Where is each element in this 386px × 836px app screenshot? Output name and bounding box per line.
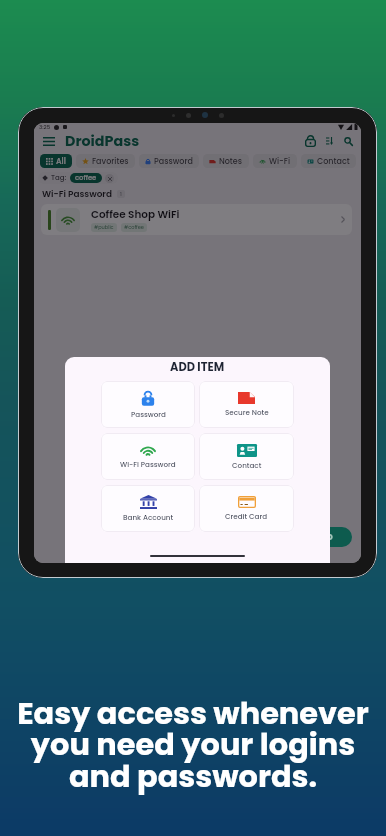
button[interactable]: Sort [320, 132, 339, 150]
button[interactable]: Contact [301, 154, 356, 168]
staticText: Easy access whenever you need your login… [17, 692, 369, 798]
staticText: ADD ITEM [170, 359, 225, 375]
button[interactable]: Password [101, 381, 195, 428]
button[interactable]: All [40, 154, 72, 168]
staticText: Bank Account [123, 512, 174, 522]
button[interactable]: Wi-Fi [253, 154, 297, 168]
staticText: coffee [75, 173, 97, 183]
button[interactable]: Bank Account [101, 485, 195, 532]
staticText: DroidPass [65, 131, 140, 151]
button[interactable]: Credit Card [199, 485, 294, 532]
staticText: Coffee Shop WiFi [91, 207, 180, 222]
button[interactable]: Lock vault [300, 132, 320, 150]
staticText: Favorites [92, 156, 129, 167]
staticText: 3:25 [39, 123, 51, 131]
staticText: Password [154, 156, 193, 167]
staticText: Wi-Fi [269, 156, 291, 167]
staticText: Wi-Fi Password [120, 459, 176, 469]
staticText: Wi-Fi Password [42, 188, 112, 200]
staticText: Credit Card [225, 511, 268, 521]
staticText: Tag: [51, 173, 67, 183]
staticText: 1 [120, 190, 122, 198]
button[interactable]: ADD [294, 527, 352, 547]
button[interactable]: Contact [199, 433, 294, 480]
staticText: Contact [317, 156, 350, 167]
button[interactable]: Notes [203, 154, 249, 168]
staticText: Contact [232, 460, 262, 470]
button[interactable]: Favorites [76, 154, 135, 168]
staticText: #public [94, 224, 114, 231]
button[interactable]: Password [139, 154, 199, 168]
button[interactable]: Coffee Shop WiFi [41, 204, 352, 235]
button[interactable]: Menu [40, 132, 58, 150]
staticText: ADD [313, 531, 333, 544]
button[interactable]: Clear tag [105, 174, 114, 183]
staticText: Notes [219, 156, 243, 167]
staticText: All [56, 156, 66, 167]
button[interactable]: Wi-Fi Password [101, 433, 195, 480]
button[interactable]: Secure Note [199, 381, 294, 428]
staticText: Password [131, 409, 166, 419]
staticText: #coffee [124, 224, 144, 231]
button[interactable]: Search [339, 132, 358, 150]
staticText: Secure Note [225, 407, 269, 417]
